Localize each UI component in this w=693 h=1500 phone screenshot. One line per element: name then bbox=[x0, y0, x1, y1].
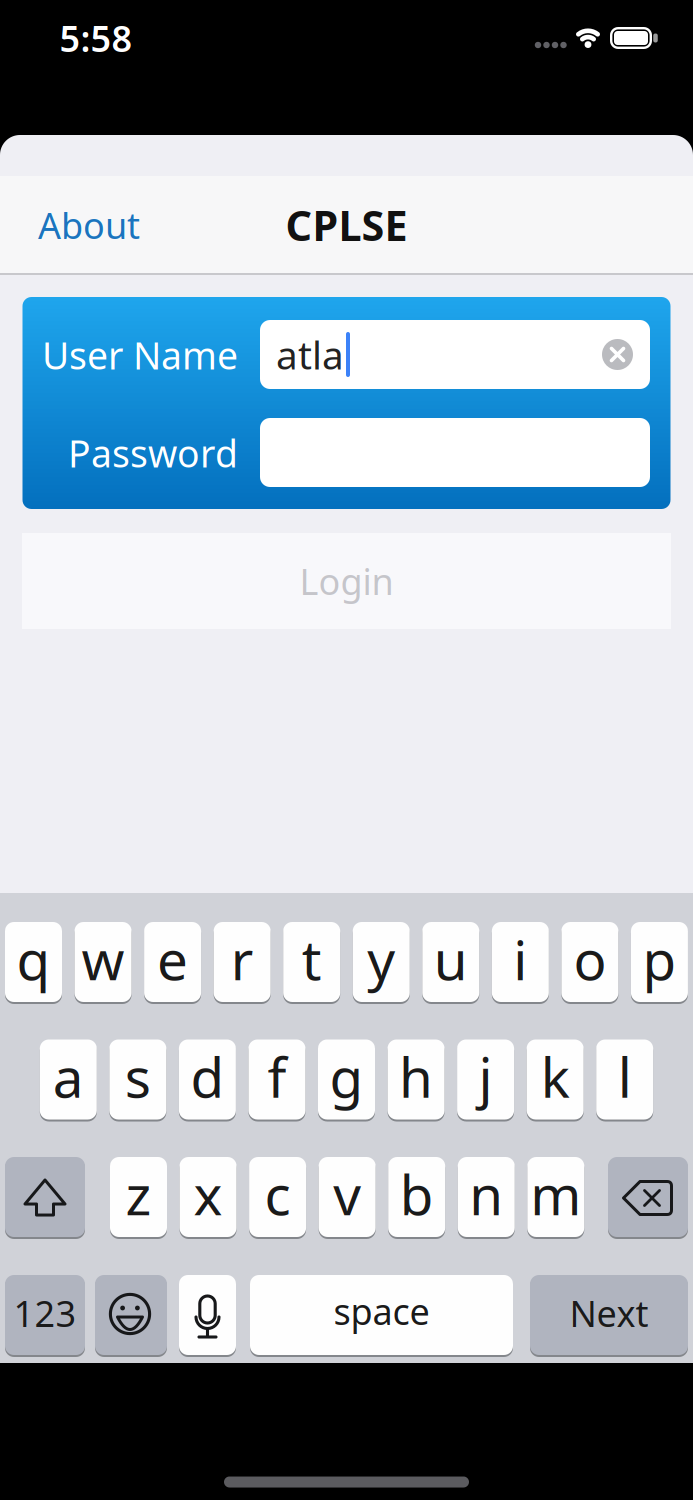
button[interactable]: q bbox=[5, 922, 62, 1002]
button[interactable]: a bbox=[40, 1039, 97, 1119]
button[interactable]: Password bbox=[260, 418, 650, 487]
staticText: n bbox=[469, 1158, 503, 1230]
button[interactable]: c bbox=[249, 1157, 306, 1237]
staticText: About bbox=[38, 201, 140, 249]
staticText: l bbox=[618, 1040, 632, 1113]
staticText: x bbox=[194, 1158, 223, 1230]
staticText: i bbox=[513, 923, 527, 995]
staticText: g bbox=[329, 1040, 363, 1113]
button[interactable]: p bbox=[631, 922, 688, 1002]
button[interactable]: u bbox=[422, 922, 479, 1002]
staticText: c bbox=[265, 1158, 291, 1230]
staticText: t bbox=[302, 923, 322, 995]
button[interactable]: x bbox=[180, 1157, 237, 1237]
button[interactable]: w bbox=[74, 922, 131, 1002]
staticText: v bbox=[333, 1158, 361, 1230]
button[interactable]: 123 bbox=[5, 1275, 85, 1355]
button[interactable]: k bbox=[527, 1039, 584, 1119]
button[interactable]: f bbox=[248, 1039, 305, 1119]
button[interactable]: s bbox=[109, 1039, 166, 1119]
button[interactable]: j bbox=[457, 1039, 514, 1119]
staticText: k bbox=[541, 1040, 570, 1113]
staticText: j bbox=[479, 1040, 493, 1113]
button[interactable]: v bbox=[319, 1157, 376, 1237]
staticText: z bbox=[125, 1158, 151, 1230]
staticText: User Name bbox=[42, 330, 238, 380]
staticText: w bbox=[81, 923, 124, 995]
button[interactable]: m bbox=[527, 1157, 584, 1237]
button[interactable]: User Name bbox=[260, 320, 650, 389]
button[interactable]: l bbox=[596, 1039, 653, 1119]
button[interactable]: i bbox=[492, 922, 549, 1002]
button[interactable]: About bbox=[38, 201, 238, 249]
staticText: Login bbox=[299, 557, 393, 605]
button[interactable]: z bbox=[110, 1157, 167, 1237]
button[interactable]: h bbox=[388, 1039, 445, 1119]
button[interactable]: b bbox=[388, 1157, 445, 1237]
staticText: Next bbox=[569, 1289, 648, 1337]
staticText: o bbox=[573, 923, 606, 995]
staticText: d bbox=[190, 1040, 224, 1113]
button[interactable]: Next bbox=[530, 1275, 688, 1355]
button[interactable]: y bbox=[353, 922, 410, 1002]
staticText: s bbox=[125, 1040, 151, 1113]
staticText: CPLSE bbox=[285, 198, 407, 252]
staticText: f bbox=[267, 1040, 286, 1113]
staticText: e bbox=[157, 923, 188, 995]
staticText: b bbox=[400, 1158, 434, 1230]
button[interactable]: o bbox=[561, 922, 618, 1002]
staticText: 123 bbox=[13, 1289, 76, 1337]
button[interactable]: g bbox=[318, 1039, 375, 1119]
button[interactable]: Shift bbox=[5, 1157, 85, 1237]
button[interactable]: r bbox=[214, 922, 271, 1002]
button[interactable]: Login bbox=[22, 533, 671, 629]
button[interactable]: n bbox=[458, 1157, 515, 1237]
staticText: r bbox=[231, 923, 254, 995]
staticText: 5:58 bbox=[59, 14, 132, 62]
staticText: u bbox=[434, 923, 468, 995]
button[interactable]: d bbox=[179, 1039, 236, 1119]
staticText: Password bbox=[68, 428, 238, 478]
staticText: space bbox=[333, 1287, 429, 1335]
staticText: h bbox=[399, 1040, 433, 1113]
button[interactable]: Clear text bbox=[602, 339, 633, 370]
staticText: q bbox=[16, 923, 50, 995]
staticText: y bbox=[367, 923, 395, 995]
staticText: atla bbox=[276, 329, 344, 380]
button[interactable]: Emoji bbox=[95, 1275, 167, 1355]
button[interactable]: Dictate bbox=[179, 1275, 236, 1355]
staticText: a bbox=[53, 1040, 84, 1113]
button[interactable]: t bbox=[283, 922, 340, 1002]
staticText: m bbox=[530, 1158, 581, 1230]
button[interactable]: space bbox=[250, 1275, 513, 1355]
button[interactable]: e bbox=[144, 922, 201, 1002]
button[interactable]: Delete bbox=[608, 1157, 688, 1237]
staticText: p bbox=[642, 923, 676, 995]
